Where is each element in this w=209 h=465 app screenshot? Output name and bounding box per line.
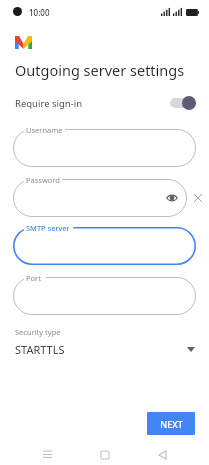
button[interactable]: Recent apps [36,444,58,465]
staticText: STARTTLS [15,342,65,357]
button[interactable]: Require sign-in toggle [170,96,196,110]
button[interactable]: Require sign-in [0,90,209,116]
button[interactable]: Home [94,444,116,465]
button[interactable]: Clear password [187,179,209,217]
staticText: Password [26,175,60,185]
staticText: Port [26,273,41,283]
button[interactable]: Security type [0,327,209,357]
staticText: 10:00 [29,7,50,18]
staticText: Require sign-in [15,97,83,110]
button[interactable]: Show password [165,191,179,205]
button[interactable]: Password [13,179,187,217]
button[interactable]: Back [151,444,173,465]
button[interactable]: Port [13,277,196,315]
staticText: SMTP server [26,223,70,233]
staticText: NEXT [160,418,183,430]
button[interactable]: SMTP server [13,227,196,265]
staticText: Outgoing server settings [15,60,185,80]
staticText: Security type [15,327,61,337]
button[interactable]: NEXT [147,412,195,435]
button[interactable]: Username [13,129,196,167]
staticText: Username [26,125,63,135]
